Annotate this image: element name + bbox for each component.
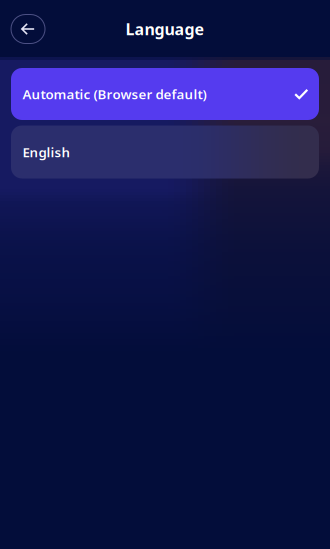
staticText: Automatic (Browser default) — [22, 85, 206, 103]
staticText: Language — [125, 18, 204, 40]
button[interactable]: English — [11, 125, 319, 178]
button[interactable]: Back — [11, 14, 45, 43]
button[interactable]: Automatic (Browser default) — [11, 68, 319, 120]
staticText: English — [22, 143, 70, 161]
